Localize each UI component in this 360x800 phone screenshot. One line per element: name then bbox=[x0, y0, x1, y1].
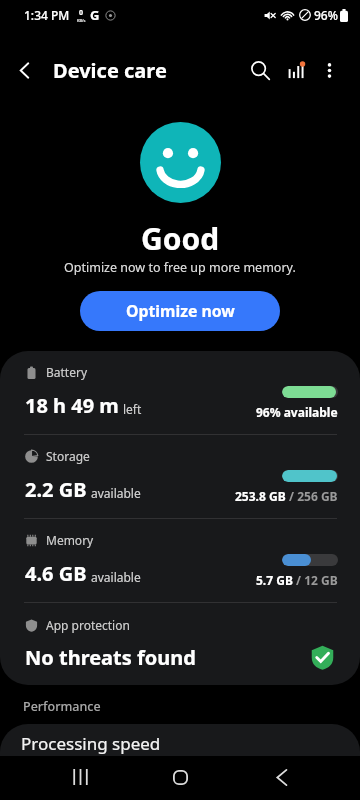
staticText: 96% available bbox=[256, 404, 338, 420]
button[interactable]: Home bbox=[159, 756, 201, 798]
button[interactable]: Navigate up bbox=[0, 46, 48, 94]
staticText: 253.8 GB bbox=[235, 488, 286, 504]
staticText: available bbox=[91, 569, 141, 585]
staticText: App protection bbox=[46, 617, 130, 633]
staticText: Storage bbox=[46, 448, 90, 464]
staticText: 96% bbox=[314, 7, 338, 23]
staticText: Memory bbox=[46, 532, 94, 548]
button[interactable]: Storage bbox=[0, 435, 360, 518]
staticText: 5.7 GB bbox=[256, 572, 293, 588]
staticText: available bbox=[91, 485, 141, 501]
button[interactable]: Usage statistics bbox=[279, 53, 313, 87]
button[interactable]: Back bbox=[260, 756, 302, 798]
button[interactable]: Optimize now bbox=[80, 291, 280, 331]
staticText: / 12 GB bbox=[293, 572, 338, 588]
button[interactable]: Recent apps bbox=[59, 756, 101, 798]
button[interactable]: App protection bbox=[0, 603, 360, 685]
staticText: 18 h 49 m bbox=[25, 392, 119, 419]
staticText: Optimize now to free up more memory. bbox=[64, 259, 296, 276]
staticText: 2.2 GB bbox=[25, 476, 87, 503]
button[interactable]: More options bbox=[313, 54, 346, 87]
button[interactable]: Memory bbox=[0, 519, 360, 602]
staticText: Good bbox=[141, 218, 220, 259]
staticText: 1:34 PM bbox=[24, 7, 70, 23]
staticText: Battery bbox=[46, 364, 88, 380]
button[interactable]: Search bbox=[241, 51, 279, 89]
staticText: 4.6 GB bbox=[25, 560, 87, 587]
staticText: left bbox=[123, 401, 142, 417]
staticText: / 256 GB bbox=[286, 488, 338, 504]
staticText: KB/s bbox=[77, 18, 86, 23]
button[interactable]: Battery bbox=[0, 351, 360, 434]
staticText: Optimize now bbox=[126, 300, 235, 322]
staticText: 0 bbox=[79, 8, 84, 18]
staticText: G bbox=[90, 6, 100, 24]
staticText: Device care bbox=[53, 57, 167, 84]
button[interactable]: Processing speed bbox=[0, 724, 360, 769]
staticText: No threats found bbox=[25, 644, 196, 671]
staticText: Performance bbox=[23, 698, 101, 715]
staticText: Processing speed bbox=[21, 732, 161, 755]
